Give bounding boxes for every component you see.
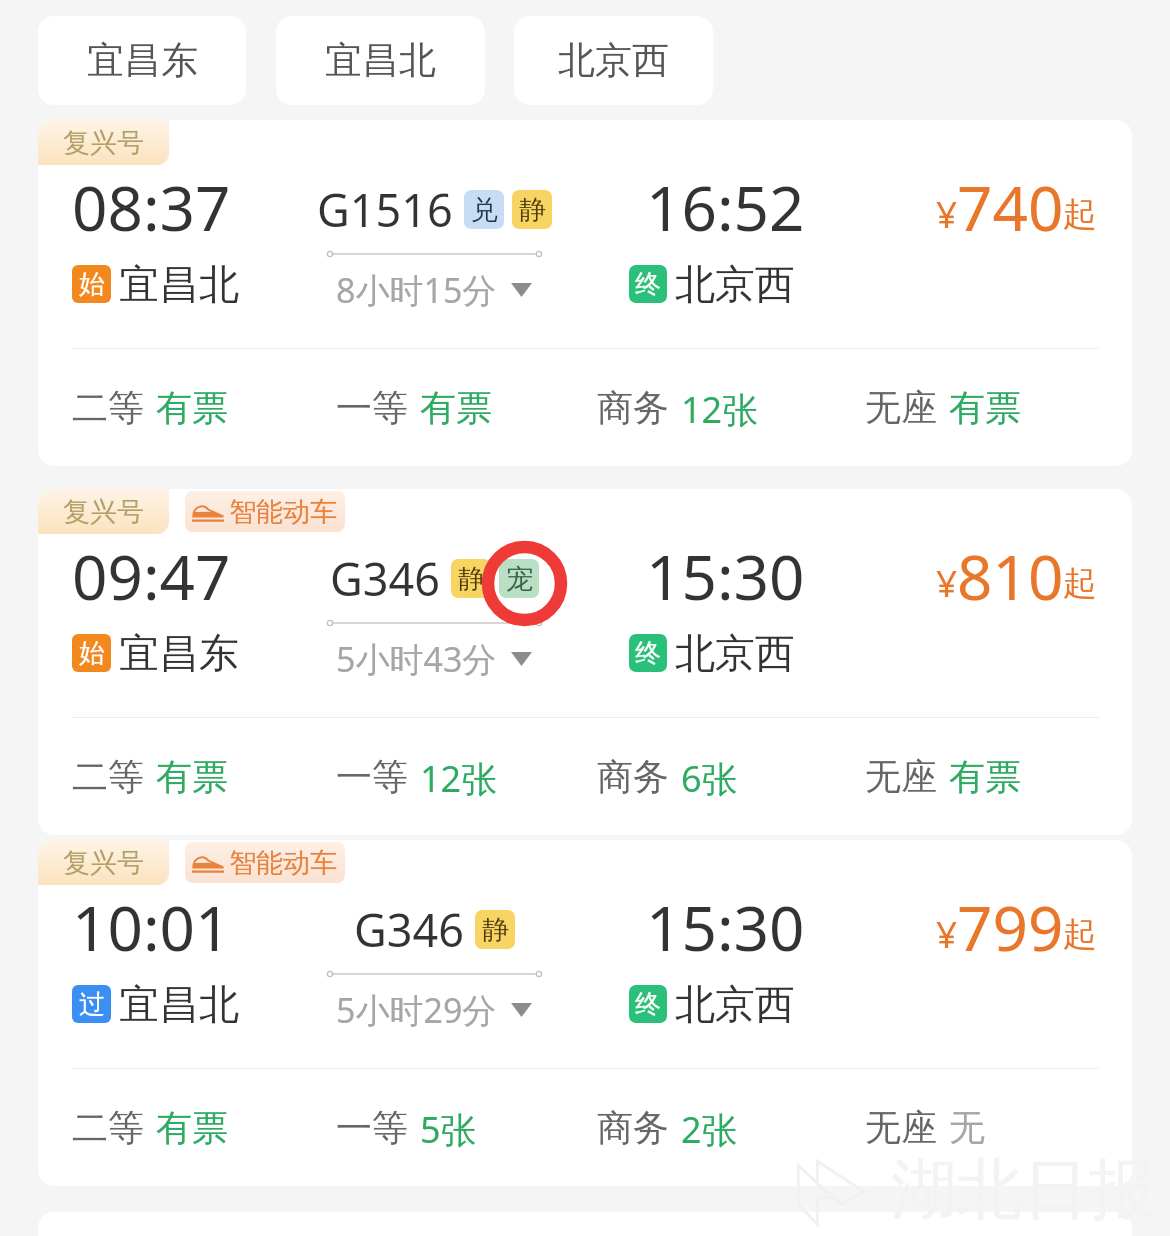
button[interactable]: 复兴号 (38, 840, 1132, 1186)
staticText: 始 (79, 637, 105, 670)
staticText: 08:37 (72, 165, 231, 249)
staticText: 810 (957, 534, 1064, 618)
staticText: 起 (1063, 913, 1097, 956)
staticText: 16:52 (646, 165, 805, 249)
staticText: 2张 (681, 1105, 738, 1154)
staticText: 5小时29分 (336, 987, 497, 1033)
button[interactable]: 宜昌北 (276, 16, 485, 105)
staticText: 湖北日报 (891, 1148, 1155, 1231)
button[interactable]: Show stops (336, 987, 532, 1033)
staticText: 有票 (949, 385, 1021, 430)
staticText: 有票 (156, 1105, 228, 1150)
staticText: 北京西 (675, 979, 795, 1029)
staticText: ¥ (936, 557, 958, 607)
button[interactable]: 宜昌东 (38, 16, 246, 105)
staticText: 商务 (597, 1105, 669, 1150)
staticText: 兑 (471, 193, 498, 227)
staticText: 二等 (72, 385, 144, 430)
staticText: 复兴号 (63, 846, 144, 880)
staticText: 起 (1063, 193, 1097, 236)
staticText: 有票 (420, 385, 492, 430)
staticText: 宜昌北 (119, 259, 239, 309)
staticText: 静 (482, 913, 509, 947)
staticText: 740 (957, 165, 1064, 249)
staticText: 起 (1063, 562, 1097, 605)
staticText: 静 (458, 562, 485, 596)
staticText: 无 (949, 1105, 985, 1150)
staticText: 15:30 (646, 885, 805, 969)
staticText: 10:01 (72, 885, 231, 969)
staticText: 商务 (597, 385, 669, 430)
staticText: 15:30 (646, 534, 805, 618)
staticText: 二等 (72, 1105, 144, 1150)
staticText: 有票 (156, 385, 228, 430)
staticText: 商务 (597, 754, 669, 799)
button[interactable]: Show stops (336, 267, 532, 313)
staticText: 北京西 (675, 628, 795, 678)
button[interactable]: 复兴号 (38, 120, 1132, 466)
staticText: 始 (79, 268, 105, 301)
staticText: 智能动车 (229, 846, 337, 880)
staticText: 智能动车 (229, 495, 337, 529)
staticText: 5小时43分 (336, 636, 497, 682)
staticText: 无座 (865, 754, 937, 799)
staticText: 静 (519, 193, 546, 227)
staticText: 一等 (336, 1105, 408, 1150)
staticText: 无座 (865, 385, 937, 430)
staticText: 5张 (420, 1105, 477, 1154)
staticText: 宜昌东 (119, 628, 239, 678)
staticText: 复兴号 (63, 495, 144, 529)
staticText: 12张 (420, 754, 498, 803)
staticText: 宜昌北 (119, 979, 239, 1029)
button[interactable]: 北京西 (514, 16, 713, 105)
staticText: 北京西 (558, 37, 669, 84)
staticText: 有票 (156, 754, 228, 799)
staticText: 8小时15分 (336, 267, 497, 313)
button[interactable]: 复兴号 (38, 489, 1132, 835)
staticText: ¥ (936, 188, 958, 238)
staticText: 09:47 (72, 534, 231, 618)
staticText: 二等 (72, 754, 144, 799)
staticText: G346 (330, 548, 440, 609)
button[interactable]: Show stops (336, 636, 532, 682)
staticText: 6张 (681, 754, 738, 803)
staticText: 宠 (506, 562, 533, 596)
staticText: 宜昌东 (87, 37, 198, 84)
staticText: 北京西 (675, 259, 795, 309)
staticText: G1516 (317, 179, 453, 240)
staticText: 复兴号 (63, 126, 144, 160)
staticText: 无座 (865, 1105, 937, 1150)
staticText: 终 (635, 637, 661, 670)
staticText: 799 (957, 885, 1064, 969)
staticText: 终 (635, 268, 661, 301)
staticText: 终 (635, 988, 661, 1021)
staticText: G346 (354, 899, 464, 960)
staticText: 过 (79, 988, 105, 1021)
staticText: 12张 (681, 385, 759, 434)
staticText: 宜昌北 (325, 37, 436, 84)
staticText: 有票 (949, 754, 1021, 799)
staticText: ¥ (936, 908, 958, 958)
staticText: 一等 (336, 385, 408, 430)
staticText: 一等 (336, 754, 408, 799)
